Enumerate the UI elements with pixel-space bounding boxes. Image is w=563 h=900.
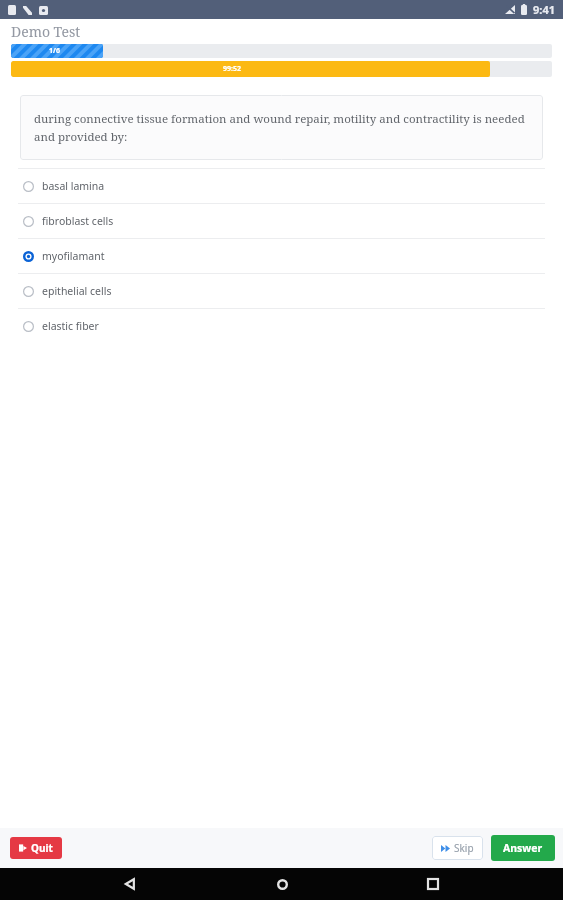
button[interactable]: elastic fiber — [18, 309, 545, 343]
button[interactable]: Home — [260, 868, 304, 900]
button[interactable]: myofilamant — [18, 239, 545, 273]
staticText: Skip — [454, 841, 474, 855]
staticText: 1/6 — [49, 46, 60, 56]
staticText: during connective tissue formation and w… — [34, 111, 529, 144]
staticText: 9:41 — [533, 2, 555, 17]
staticText: myofilamant — [42, 249, 105, 263]
staticText: fibroblast cells — [42, 214, 114, 228]
staticText: epithelial cells — [42, 284, 112, 298]
staticText: 99:52 — [223, 64, 241, 74]
button[interactable]: Quit — [10, 837, 62, 859]
button[interactable]: basal lamina — [18, 169, 545, 203]
staticText: basal lamina — [42, 179, 105, 193]
button[interactable]: fibroblast cells — [18, 204, 545, 238]
button[interactable]: Skip — [432, 836, 483, 860]
button[interactable]: Recent apps — [411, 868, 455, 900]
button[interactable]: Answer — [491, 835, 555, 861]
button[interactable]: epithelial cells — [18, 274, 545, 308]
button[interactable]: Back — [108, 868, 152, 900]
staticText: Quit — [31, 841, 53, 855]
staticText: elastic fiber — [42, 319, 99, 333]
staticText: Demo Test — [11, 22, 81, 41]
staticText: Answer — [503, 841, 543, 855]
